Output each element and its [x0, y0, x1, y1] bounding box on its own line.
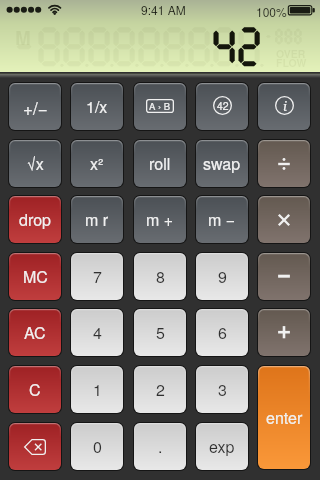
staticText: 42 [217, 98, 229, 113]
staticText: m + [146, 208, 174, 231]
staticText: C [29, 378, 41, 401]
button[interactable]: 1 [70, 365, 124, 414]
button[interactable]: Swap A and B [133, 82, 187, 131]
staticText: 1/x [86, 95, 108, 118]
staticText: FLOW [276, 55, 307, 70]
button[interactable]: . [133, 422, 187, 471]
button[interactable]: 4 [70, 308, 124, 357]
staticText: 0 [93, 435, 102, 458]
button[interactable]: 7 [70, 252, 124, 301]
button[interactable]: m + [133, 195, 187, 244]
button[interactable]: +/− [8, 82, 62, 131]
button[interactable]: MC [8, 252, 62, 301]
staticText: exp [209, 435, 235, 458]
button[interactable]: 0 [70, 422, 124, 471]
button[interactable]: Backspace [8, 422, 62, 471]
staticText: 100% [256, 3, 287, 20]
staticText: A › B [149, 99, 171, 113]
staticText: OVER [276, 46, 306, 61]
button[interactable]: Info [257, 82, 311, 131]
button[interactable]: drop [8, 195, 62, 244]
staticText: 1 [93, 378, 102, 401]
staticText: roll [149, 152, 171, 175]
button[interactable]: x² [70, 139, 124, 188]
staticText: √x [27, 152, 44, 175]
button[interactable]: 8 [133, 252, 187, 301]
staticText: 3 [218, 378, 227, 401]
button[interactable]: 9 [195, 252, 249, 301]
staticText: . [158, 435, 163, 458]
staticText: drop [19, 208, 51, 231]
staticText: MC [23, 265, 48, 288]
button[interactable]: 2 [133, 365, 187, 414]
button[interactable] [257, 139, 311, 188]
staticText: i [283, 97, 287, 115]
staticText: swap [203, 152, 241, 175]
staticText: 4 [93, 321, 102, 344]
button[interactable]: exp [195, 422, 249, 471]
button[interactable]: C [8, 365, 62, 414]
button[interactable]: 1/x [70, 82, 124, 131]
button[interactable] [257, 195, 311, 244]
staticText: M [15, 24, 31, 51]
button[interactable] [257, 308, 311, 357]
staticText: AC [24, 321, 46, 344]
staticText: 5 [156, 321, 165, 344]
staticText: m r [85, 208, 109, 231]
button[interactable]: roll [133, 139, 187, 188]
button[interactable]: swap [195, 139, 249, 188]
button[interactable]: √x [8, 139, 62, 188]
staticText: enter [266, 406, 303, 429]
staticText: x² [90, 152, 104, 175]
button[interactable]: 5 [133, 308, 187, 357]
button[interactable]: 3 [195, 365, 249, 414]
button[interactable] [257, 252, 311, 301]
button[interactable]: enter [257, 365, 311, 470]
staticText: 8 [156, 265, 165, 288]
button[interactable]: 6 [195, 308, 249, 357]
button[interactable]: AC [8, 308, 62, 357]
staticText: +/− [23, 95, 48, 119]
staticText: 6 [218, 321, 227, 344]
staticText: m − [208, 208, 236, 231]
button[interactable]: m − [195, 195, 249, 244]
staticText: 9 [218, 265, 227, 288]
staticText: 7 [93, 265, 102, 288]
button[interactable]: Constant 42 [195, 82, 249, 131]
staticText: 2 [156, 378, 165, 401]
button[interactable]: m r [70, 195, 124, 244]
staticText: 9:41 AM [141, 1, 186, 18]
